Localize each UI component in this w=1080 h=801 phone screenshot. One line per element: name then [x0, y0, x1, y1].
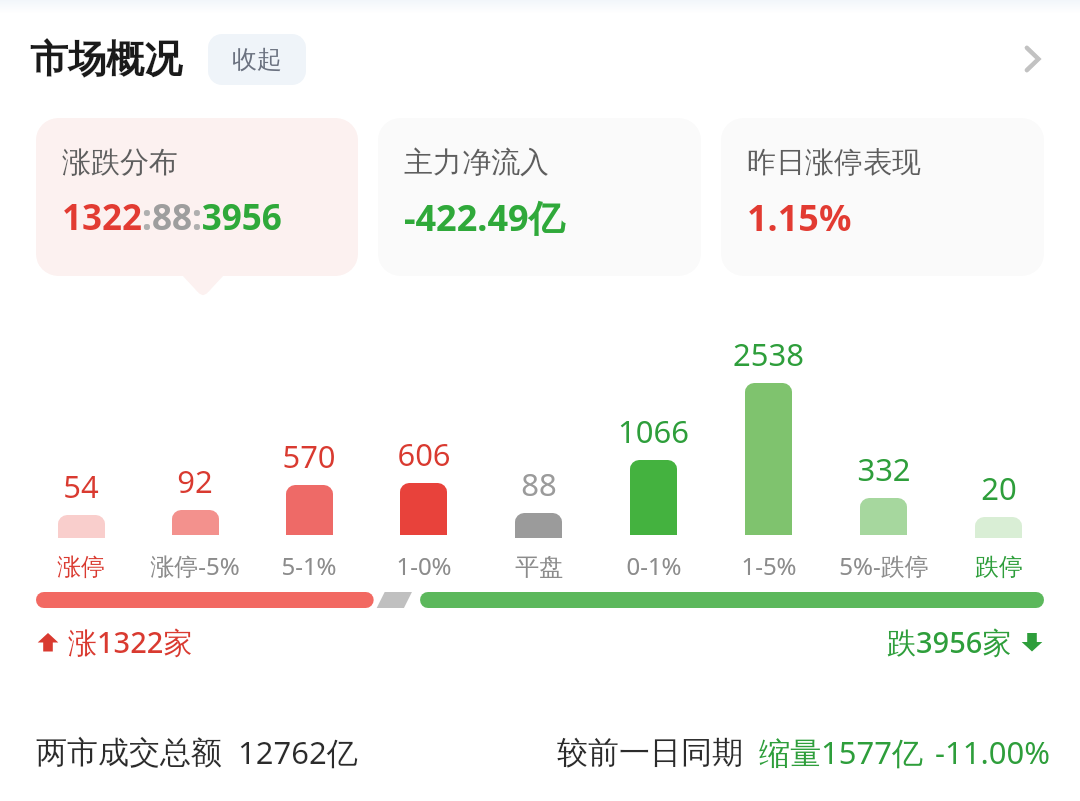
- staticText: 606: [397, 433, 451, 475]
- staticText: 1-0%: [396, 549, 452, 582]
- button[interactable]: 展开更多: [1004, 31, 1060, 87]
- staticText: -11.00%: [935, 731, 1050, 773]
- staticText: 5%-跌停: [839, 549, 929, 582]
- staticText: 昨日涨停表现: [747, 144, 921, 181]
- staticText: 88: [521, 463, 557, 505]
- staticText: -422.49亿: [404, 193, 565, 242]
- staticText: 涨停-5%: [150, 549, 240, 582]
- button[interactable]: 昨日涨停表现: [721, 118, 1044, 276]
- button[interactable]: 涨跌分布: [36, 118, 358, 276]
- staticText: 涨1322家: [68, 622, 193, 662]
- staticText: 涨停: [57, 552, 105, 582]
- staticText: 570: [282, 435, 336, 477]
- staticText: 332: [857, 448, 911, 490]
- staticText: 收起: [232, 44, 282, 75]
- staticText: 主力净流入: [404, 144, 549, 181]
- button[interactable]: 主力净流入: [378, 118, 701, 276]
- staticText: 0-1%: [626, 549, 682, 582]
- staticText: 1322:88:3956: [62, 193, 282, 241]
- staticText: 5-1%: [281, 549, 337, 582]
- staticText: 较前一日同期: [557, 733, 743, 772]
- staticText: 跌停: [975, 552, 1023, 582]
- staticText: 1.15%: [747, 193, 852, 242]
- staticText: 跌3956家: [887, 622, 1012, 662]
- staticText: 缩量1577亿: [759, 731, 923, 773]
- staticText: 1066: [618, 410, 689, 452]
- staticText: 1-5%: [741, 549, 797, 582]
- staticText: 2538: [733, 333, 804, 375]
- staticText: 两市成交总额: [36, 733, 222, 772]
- staticText: 20: [981, 467, 1017, 509]
- button[interactable]: 收起: [208, 34, 306, 85]
- staticText: 涨跌分布: [62, 144, 178, 181]
- staticText: 92: [177, 460, 213, 502]
- staticText: 54: [63, 465, 99, 507]
- staticText: 市场概况: [30, 35, 182, 83]
- staticText: 12762亿: [238, 731, 358, 773]
- staticText: 平盘: [515, 552, 563, 582]
